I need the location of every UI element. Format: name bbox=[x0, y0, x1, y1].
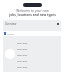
button[interactable]: Item label bbox=[17, 46, 59, 52]
staticText: jobs, locations and new types bbox=[9, 13, 56, 17]
staticText: Welcome to your new bbox=[16, 9, 49, 13]
staticText: Item label bbox=[17, 42, 28, 45]
button[interactable]: Item label bbox=[17, 52, 59, 58]
staticText: Item label bbox=[17, 66, 28, 69]
button[interactable]: Menu bbox=[23, 3, 42, 7]
button[interactable]: Item label bbox=[17, 40, 59, 46]
staticText: Search bbox=[7, 32, 15, 35]
button[interactable]: Item label bbox=[17, 64, 59, 70]
staticText: Item label bbox=[17, 54, 28, 57]
button[interactable]: Search bbox=[3, 31, 61, 36]
button[interactable]: Item label bbox=[17, 58, 59, 64]
staticText: Item label bbox=[17, 60, 28, 63]
staticText: Item label bbox=[17, 48, 28, 51]
staticText: Overview bbox=[5, 22, 17, 26]
